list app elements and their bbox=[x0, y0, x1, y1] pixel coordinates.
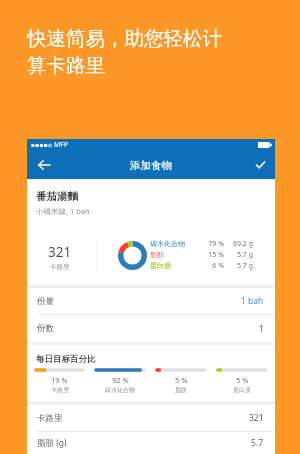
staticText: 69.2 g bbox=[228, 239, 253, 249]
button[interactable]: 份数 bbox=[27, 315, 275, 342]
staticText: MFP bbox=[54, 140, 69, 150]
staticText: 15 % bbox=[201, 250, 224, 260]
staticText: 快速简易，助您轻松计 bbox=[27, 26, 222, 51]
staticText: 蛋白质 bbox=[150, 261, 171, 270]
staticText: 5 % bbox=[175, 375, 188, 385]
staticText: 92 % bbox=[112, 375, 129, 385]
staticText: 每日目标百分比 bbox=[36, 354, 96, 365]
staticText: 碳水化合物 bbox=[105, 386, 135, 394]
staticText: 1 bbox=[259, 323, 264, 335]
staticText: 添加食物 bbox=[130, 159, 172, 172]
staticText: 蛋白质 bbox=[233, 386, 251, 394]
staticText: 算卡路里 bbox=[27, 53, 105, 78]
staticText: 脂肪 (g) bbox=[37, 437, 67, 449]
staticText: 5.7 g bbox=[228, 250, 253, 260]
staticText: 卡路里 bbox=[50, 263, 70, 271]
button[interactable]: Back bbox=[27, 151, 60, 179]
staticText: 6 % bbox=[201, 261, 224, 271]
staticText: 5.7 bbox=[251, 437, 264, 449]
staticText: 321 bbox=[48, 243, 72, 261]
staticText: 5.7 g bbox=[228, 261, 253, 271]
staticText: 19 % bbox=[51, 375, 68, 385]
button[interactable]: 份量 bbox=[27, 288, 275, 314]
staticText: 小橋米線, 1 bah bbox=[36, 206, 90, 216]
staticText: 5 % bbox=[236, 375, 249, 385]
staticText: 1 bah bbox=[241, 295, 264, 307]
staticText: 番茄湯麵 bbox=[36, 190, 78, 203]
staticText: 321 bbox=[249, 412, 264, 424]
staticText: 卡路里 bbox=[37, 413, 63, 424]
staticText: 卡路里 bbox=[51, 386, 69, 394]
staticText: 份量 bbox=[37, 296, 54, 307]
staticText: 碳水化合物 bbox=[150, 239, 185, 248]
button[interactable]: 脂肪 (g) bbox=[27, 432, 275, 454]
staticText: 份数 bbox=[37, 323, 54, 334]
staticText: 脂肪 bbox=[175, 386, 187, 394]
button[interactable]: 卡路里 bbox=[27, 405, 275, 431]
staticText: 79 % bbox=[201, 239, 224, 249]
button[interactable]: Confirm bbox=[245, 151, 275, 179]
staticText: 脂肪 bbox=[150, 250, 164, 259]
